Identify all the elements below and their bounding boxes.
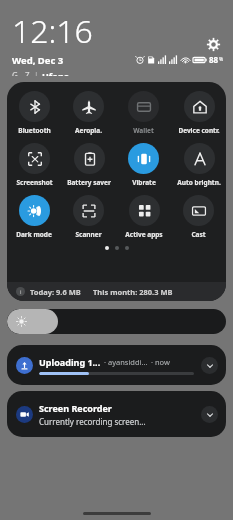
staticText: Vibrate	[132, 178, 156, 187]
button[interactable]: Scanner	[72, 195, 105, 239]
button[interactable]: Expand notification	[201, 357, 218, 374]
button[interactable]: Screen Recorder	[7, 391, 226, 437]
staticText: |	[34, 70, 39, 76]
staticText: Screenshot	[16, 178, 53, 187]
button[interactable]: Screenshot	[15, 143, 54, 187]
button[interactable]: Settings	[203, 34, 223, 54]
staticText: Wed, Dec 3	[12, 54, 64, 67]
staticText: i	[20, 288, 22, 296]
staticText: Scanner	[75, 230, 102, 239]
staticText: This month: 280.3 MB	[93, 287, 173, 297]
staticText: G	[12, 70, 18, 76]
staticText: 12:16	[12, 9, 93, 53]
staticText: Wallet	[133, 126, 154, 135]
button[interactable]: Aeropla.	[72, 91, 105, 135]
button[interactable]: Cast	[182, 195, 215, 239]
button[interactable]: Battery saver	[66, 143, 112, 187]
staticText: Ufone	[42, 70, 70, 76]
button[interactable]: Dark mode	[15, 195, 53, 239]
staticText: Z	[25, 70, 30, 76]
staticText: Auto brightn.	[177, 178, 221, 187]
staticText: %	[219, 56, 224, 63]
staticText: 88	[209, 54, 219, 65]
button[interactable]: Uploading 1...	[7, 345, 226, 385]
button[interactable]: Wallet	[127, 91, 160, 135]
staticText: Dark mode	[16, 230, 52, 239]
staticText: · ayansiddi...	[104, 357, 148, 367]
staticText: Aeropla.	[75, 126, 102, 135]
button[interactable]: Auto brightn.	[176, 143, 222, 187]
staticText: Device contr.	[178, 126, 220, 135]
staticText: · now	[151, 357, 170, 367]
staticText: Active apps	[125, 230, 163, 239]
staticText: Uploading 1...	[39, 356, 101, 368]
staticText: Battery saver	[67, 178, 111, 187]
button[interactable]: Device contr.	[177, 91, 221, 135]
staticText: Currently recording screen...	[39, 416, 146, 427]
button[interactable]: Vibrate	[127, 143, 160, 187]
button[interactable]: Bluetooth	[17, 91, 52, 135]
staticText: Bluetooth	[18, 126, 51, 135]
staticText: Screen Recorder	[39, 402, 112, 414]
button[interactable]: Active apps	[124, 195, 164, 239]
button[interactable]: Brightness	[7, 309, 226, 334]
button[interactable]: i	[7, 282, 226, 301]
staticText: Today: 9.6 MB	[30, 287, 81, 297]
button[interactable]: Expand notification	[201, 406, 218, 423]
staticText: Cast	[191, 230, 206, 239]
